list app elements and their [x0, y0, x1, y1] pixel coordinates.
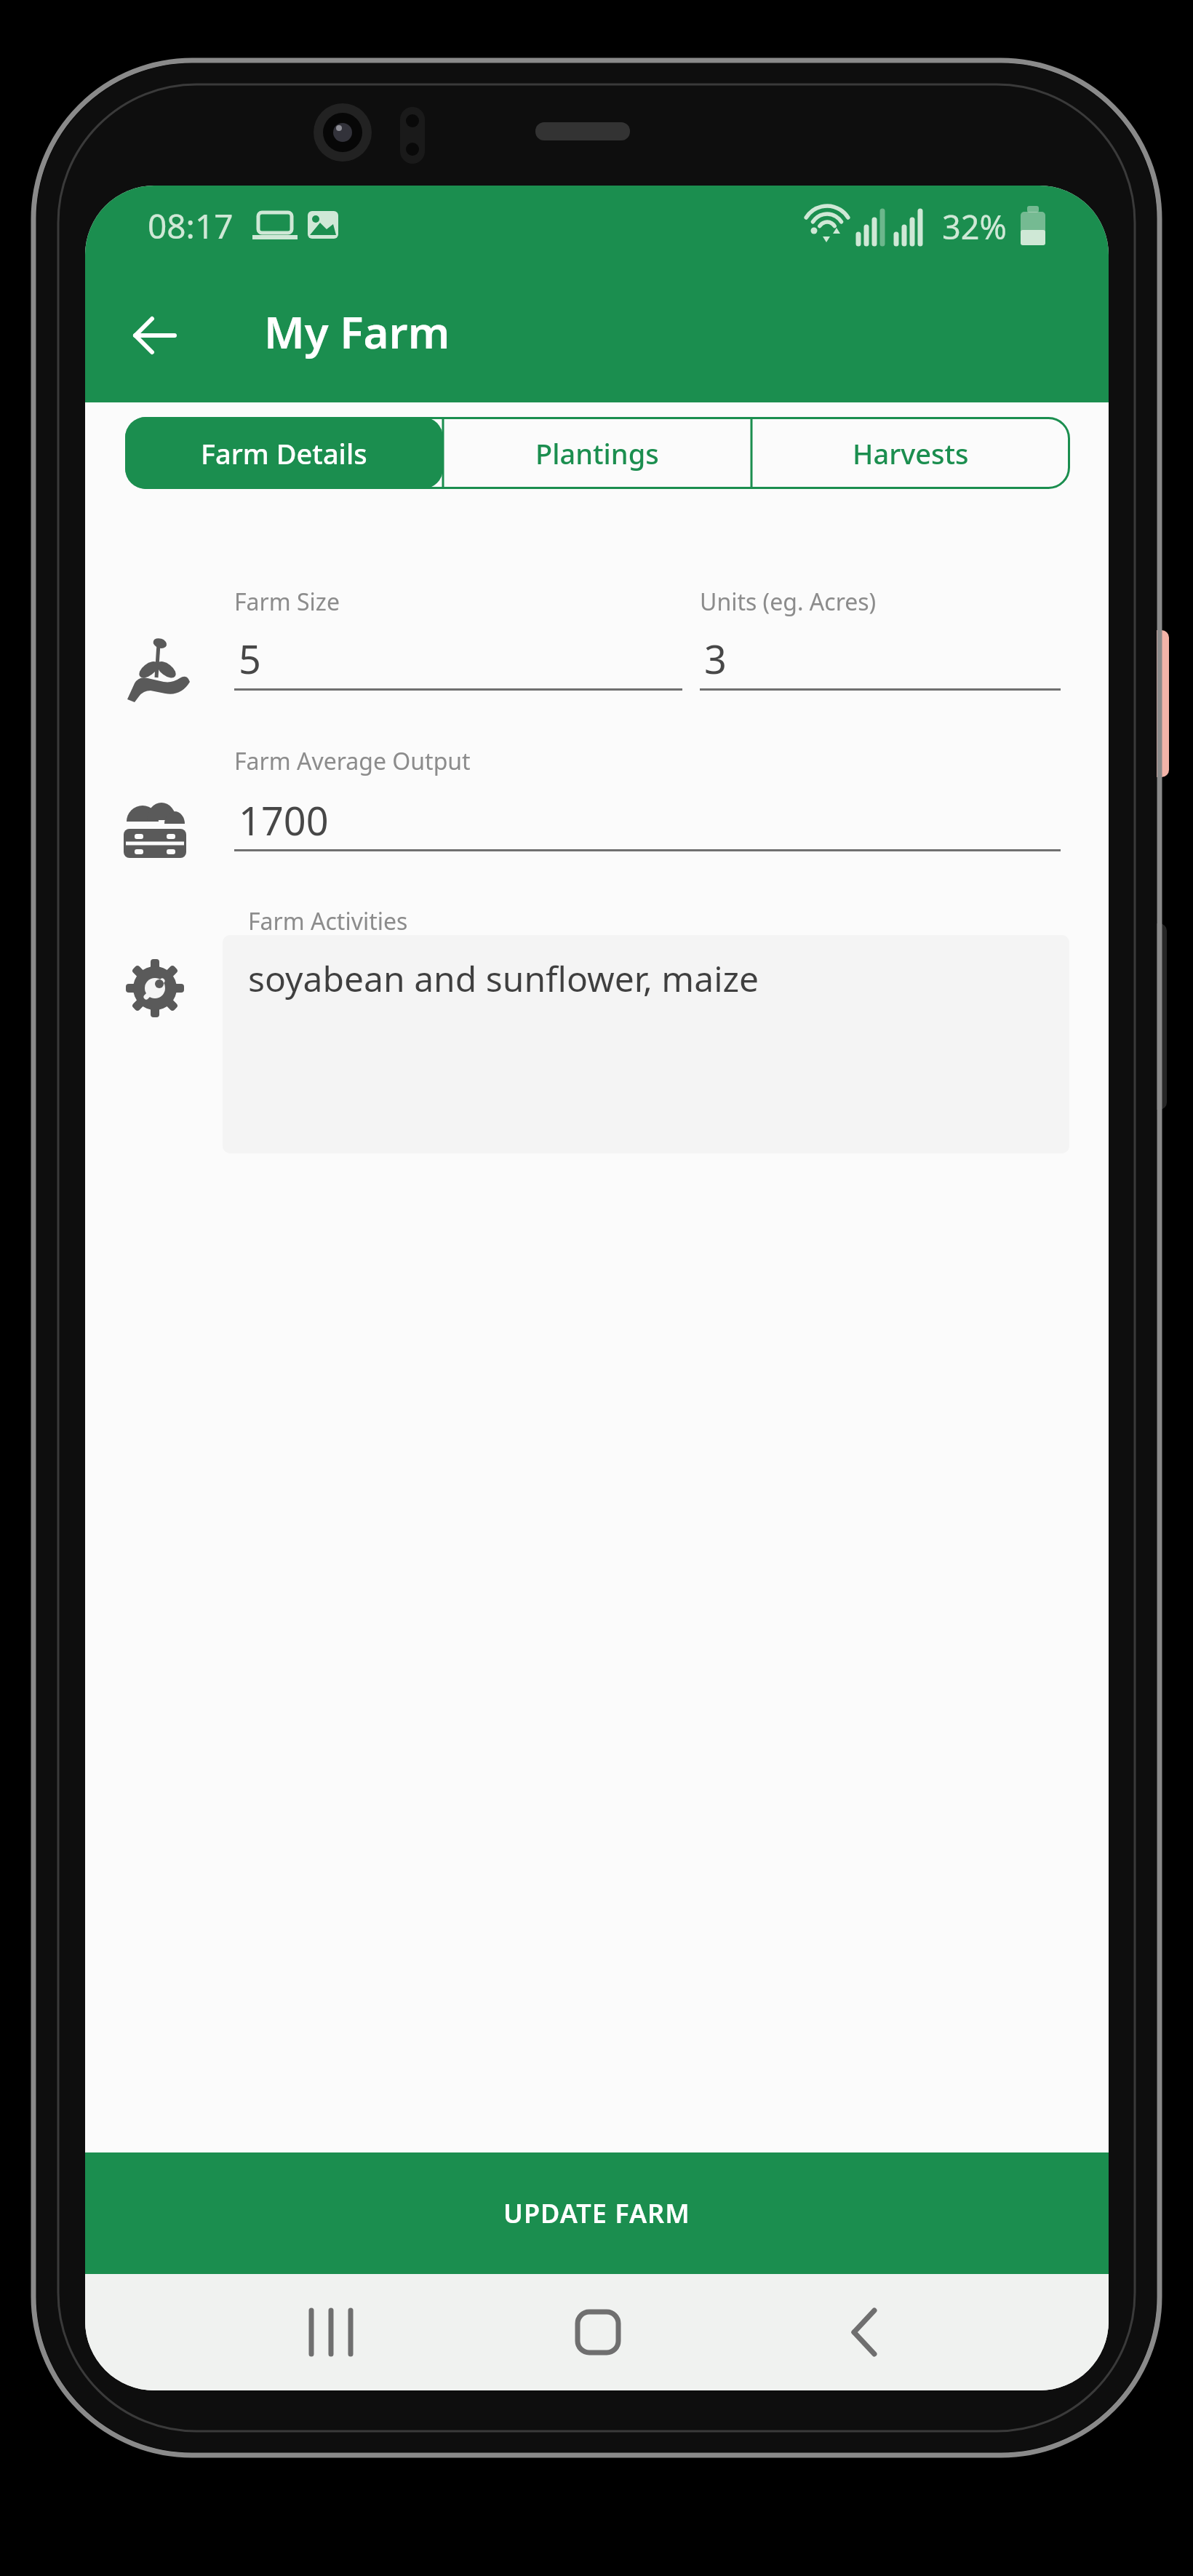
- staticText: 1700: [239, 793, 329, 847]
- staticText: Harvests: [853, 434, 969, 472]
- staticText: UPDATE FARM: [503, 2195, 690, 2231]
- button[interactable]: Farm Details: [125, 417, 443, 489]
- staticText: 08:17: [148, 203, 234, 249]
- button[interactable]: [113, 293, 196, 377]
- staticText: soyabean and sunflower, maize: [248, 955, 759, 1002]
- button[interactable]: Plantings: [443, 417, 751, 489]
- staticText: Plantings: [535, 434, 659, 472]
- staticText: Farm Activities: [248, 905, 408, 937]
- staticText: 5: [239, 632, 261, 685]
- button[interactable]: Harvests: [751, 417, 1070, 489]
- button[interactable]: [554, 2292, 642, 2372]
- staticText: Farm Size: [234, 586, 340, 618]
- staticText: Units (eg. Acres): [700, 586, 877, 618]
- staticText: 32%: [942, 204, 1007, 249]
- staticText: Farm Details: [201, 434, 367, 472]
- button[interactable]: UPDATE FARM: [85, 2152, 1109, 2274]
- staticText: My Farm: [264, 302, 450, 362]
- staticText: 3: [704, 632, 727, 685]
- staticText: Farm Average Output: [234, 745, 471, 777]
- button[interactable]: [821, 2292, 908, 2372]
- button[interactable]: [287, 2292, 375, 2372]
